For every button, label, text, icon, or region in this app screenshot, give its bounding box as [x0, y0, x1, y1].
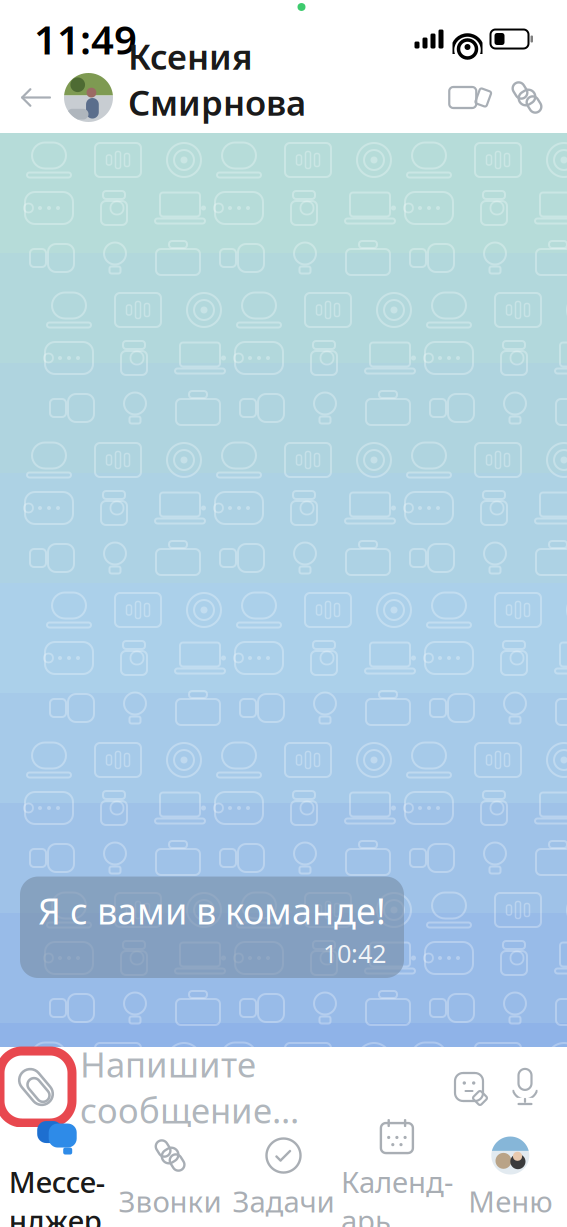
staticText: Меню [468, 1181, 552, 1220]
staticText: Ксения Смирнова [128, 33, 306, 125]
button[interactable]: Напишите сообщение... [66, 1055, 441, 1119]
staticText: 11:49 [34, 12, 137, 65]
staticText: 10:42 [323, 936, 386, 970]
staticText: Мессенджер [9, 1162, 105, 1227]
button[interactable]: Календарь [340, 1106, 454, 1227]
button[interactable]: Ксения Смирнова [64, 67, 439, 127]
staticText: Онлайн [128, 126, 228, 162]
button[interactable]: Stickers [441, 1055, 497, 1119]
button[interactable]: Voice call [499, 67, 555, 127]
button[interactable]: Attach file [6, 1055, 66, 1119]
button[interactable]: Мессенджер [0, 1106, 113, 1227]
staticText: Звонки [119, 1181, 222, 1220]
button[interactable]: Video call [439, 67, 499, 127]
button[interactable]: Меню [454, 1125, 567, 1227]
button[interactable]: Back [8, 67, 64, 127]
button[interactable]: Voice message [497, 1055, 553, 1119]
staticText: Календарь [341, 1162, 453, 1227]
staticText: Напишите сообщение... [80, 1041, 299, 1133]
staticText: Я с вами в команде! [38, 887, 386, 934]
button[interactable]: Звонки [113, 1125, 227, 1227]
staticText: Задачи [232, 1181, 334, 1220]
button[interactable]: Задачи [227, 1125, 340, 1227]
